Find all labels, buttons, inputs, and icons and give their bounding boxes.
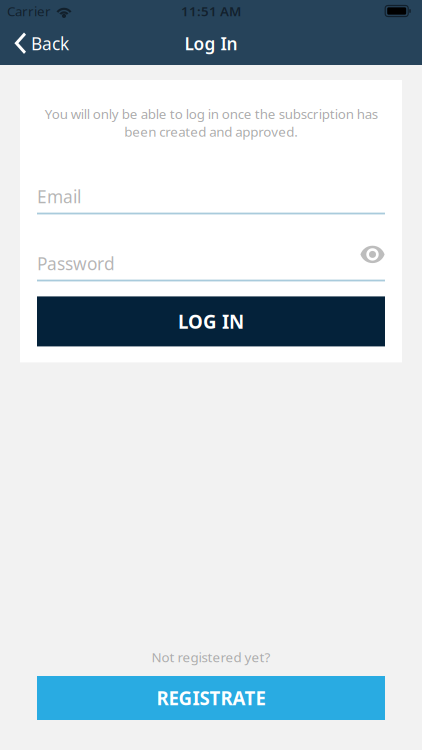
staticText: Back (31, 32, 69, 55)
staticText: Log In (184, 32, 237, 55)
button[interactable]: REGISTRATE (37, 676, 385, 720)
staticText: You will only be able to log in once the… (44, 105, 377, 140)
staticText: Carrier (7, 2, 51, 20)
button[interactable]: Email (37, 187, 385, 205)
staticText: REGISTRATE (156, 686, 265, 710)
button[interactable]: LOG IN (37, 296, 385, 346)
staticText: Password (37, 252, 115, 275)
button[interactable]: Back (0, 22, 79, 65)
button[interactable]: Password (37, 254, 360, 272)
staticText: Not registered yet? (151, 648, 270, 666)
staticText: Email (37, 185, 81, 208)
staticText: LOG IN (178, 309, 244, 334)
button[interactable]: Show password (360, 245, 385, 281)
staticText: 11:51 AM (181, 2, 241, 20)
